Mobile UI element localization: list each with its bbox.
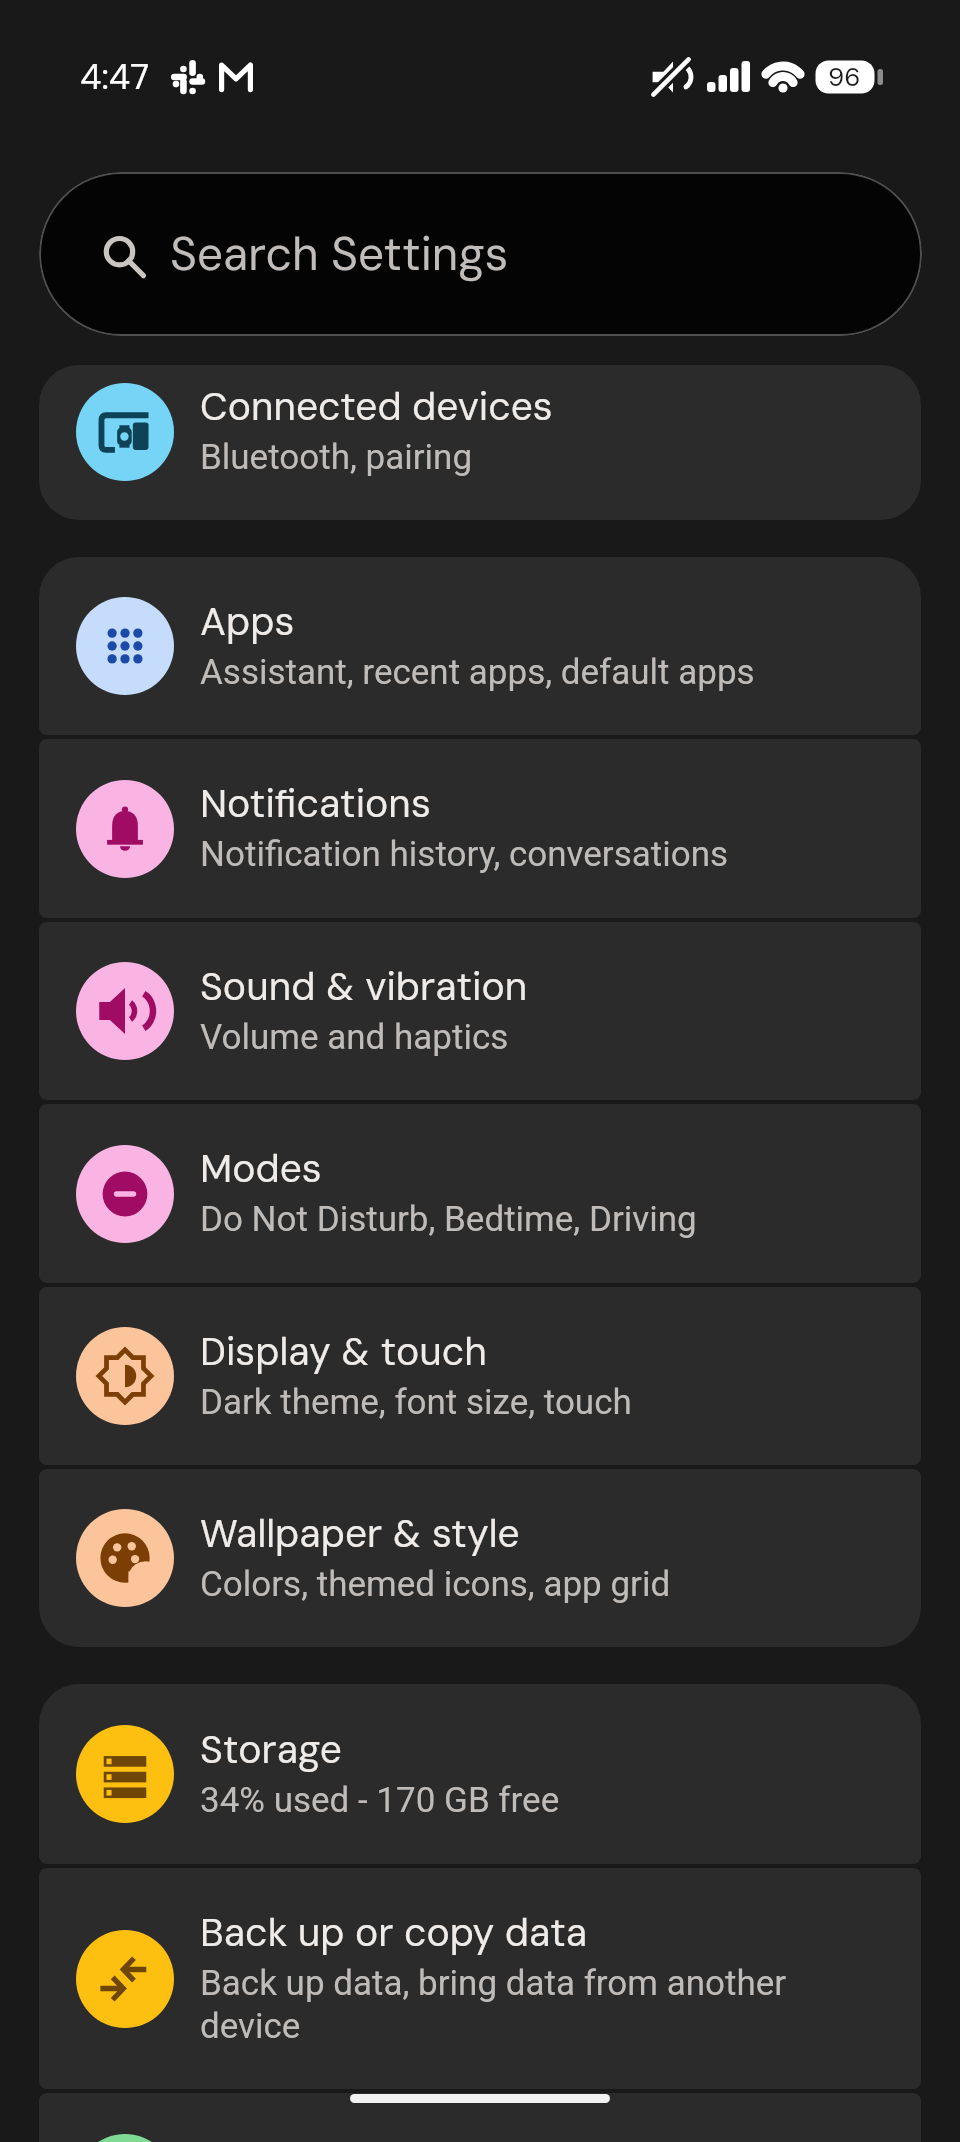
- button[interactable]: Security & privacy: [39, 2093, 921, 2142]
- staticText: Colors, themed icons, app grid: [200, 1564, 671, 1605]
- button[interactable]: Sound & vibration: [39, 922, 921, 1100]
- staticText: Connected devices: [200, 381, 553, 432]
- staticText: Apps: [200, 596, 295, 647]
- staticText: Bluetooth, pairing: [200, 437, 473, 478]
- staticText: Sound & vibration: [200, 961, 528, 1012]
- button[interactable]: Storage: [39, 1684, 921, 1864]
- staticText: Do Not Disturb, Bedtime, Driving: [200, 1199, 697, 1240]
- button[interactable]: Connected devices: [39, 365, 921, 520]
- staticText: Storage: [200, 1724, 342, 1775]
- staticText: Volume and haptics: [200, 1017, 509, 1058]
- staticText: Wallpaper & style: [200, 1508, 520, 1559]
- staticText: Back up or copy data: [200, 1907, 588, 1958]
- button[interactable]: Wallpaper & style: [39, 1469, 921, 1647]
- staticText: 96: [828, 60, 861, 93]
- staticText: 34% used - 170 GB free: [200, 1780, 560, 1821]
- button[interactable]: Modes: [39, 1104, 921, 1283]
- staticText: Assistant, recent apps, default apps: [200, 652, 755, 693]
- staticText: Modes: [200, 1143, 322, 1194]
- staticText: Notification history, conversations: [200, 834, 729, 875]
- button[interactable]: Back up or copy data: [39, 1868, 921, 2089]
- button[interactable]: Search Settings: [39, 172, 922, 336]
- button[interactable]: Notifications: [39, 739, 921, 918]
- staticText: Back up data, bring data from another de…: [200, 1963, 812, 2047]
- staticText: Search Settings: [170, 224, 509, 284]
- staticText: Display & touch: [200, 1326, 487, 1377]
- button[interactable]: Apps: [39, 557, 921, 735]
- staticText: Notifications: [200, 778, 431, 829]
- staticText: Dark theme, font size, touch: [200, 1382, 632, 1423]
- staticText: 4:47: [80, 54, 150, 100]
- button[interactable]: Display & touch: [39, 1287, 921, 1465]
